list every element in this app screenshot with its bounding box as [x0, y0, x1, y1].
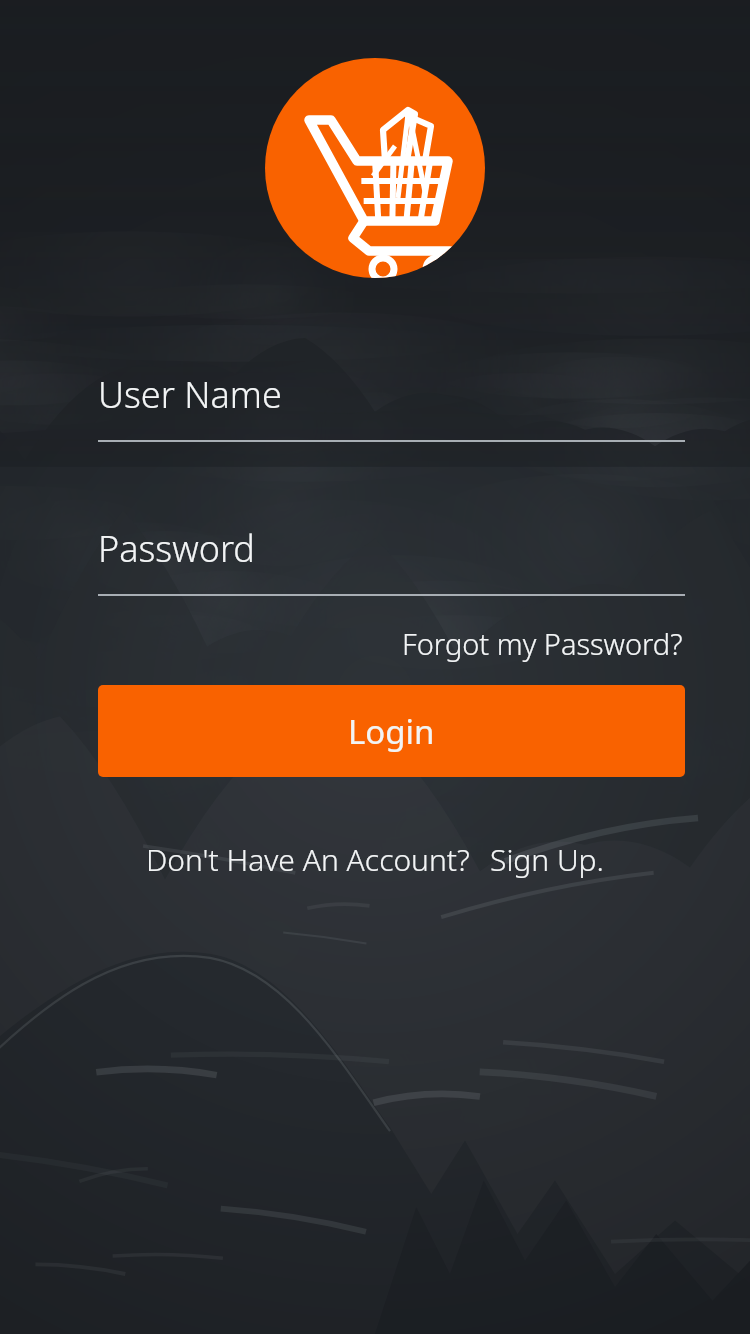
staticText: Sign Up. — [490, 839, 604, 880]
staticText: User Name — [98, 370, 282, 419]
button[interactable]: Don't Have An Account? — [146, 833, 470, 886]
button[interactable]: User Name — [98, 370, 685, 440]
button[interactable]: Sign Up. — [490, 833, 604, 886]
button[interactable]: Forgot my Password? — [400, 618, 685, 669]
staticText: Password — [98, 524, 255, 573]
button[interactable]: Password — [98, 524, 685, 594]
button[interactable]: Login — [98, 685, 685, 777]
staticText: Don't Have An Account? — [146, 839, 470, 880]
staticText: Forgot my Password? — [402, 624, 683, 663]
staticText: Login — [348, 709, 435, 754]
button[interactable]: App logo, shopping cart — [265, 58, 485, 278]
